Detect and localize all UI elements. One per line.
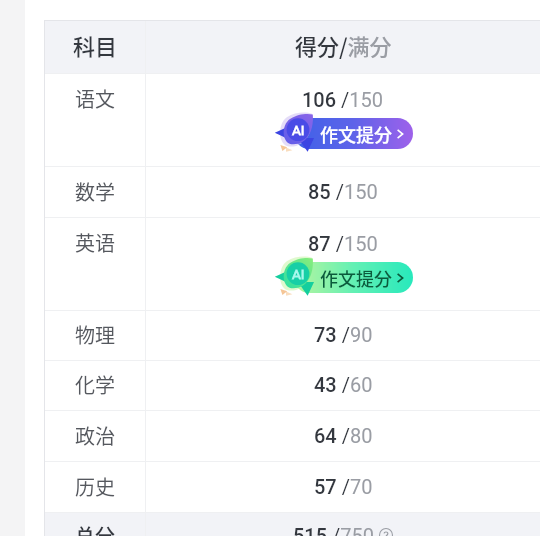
staticText: 43 /60 [314,373,373,396]
staticText: AI [292,266,305,282]
button[interactable]: 数学 [45,167,540,217]
staticText: 科目 [73,29,118,61]
staticText: 历史 [75,472,115,501]
staticText: 作文提分 [320,121,392,147]
staticText: 总分 [75,521,115,536]
button[interactable]: 语文 [45,74,540,166]
button[interactable]: 物理 [45,311,540,360]
button[interactable]: 历史 [45,462,540,512]
staticText: 87 /150 [308,232,378,255]
staticText: 数学 [75,177,115,206]
staticText: 73 /90 [314,323,373,346]
staticText: 85 /150 [308,180,378,203]
button[interactable]: 英语 [45,218,540,310]
staticText: 语文 [75,84,115,113]
staticText: AI [292,122,305,138]
staticText: 得分/满分 [295,29,392,61]
button[interactable]: 作文提分 [274,258,413,296]
button[interactable]: 总分说明 [379,528,393,536]
staticText: 64 /80 [314,424,373,447]
staticText: 化学 [75,370,115,399]
staticText: 作文提分 [320,265,392,291]
staticText: 英语 [75,228,115,257]
button[interactable]: 化学 [45,361,540,410]
button[interactable]: 总分 [45,513,540,536]
staticText: 57 /70 [314,475,373,498]
button[interactable]: 政治 [45,411,540,461]
staticText: 106 /150 [302,88,384,111]
staticText: 政治 [75,421,115,450]
staticText: 物理 [75,320,115,349]
staticText: 515 /750 [293,524,375,536]
button[interactable]: 作文提分 [274,114,413,152]
